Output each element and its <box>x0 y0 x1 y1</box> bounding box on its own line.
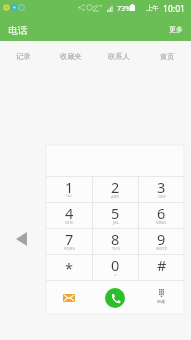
staticText: WXYZ <box>156 246 168 252</box>
button[interactable]: 3 <box>139 176 184 202</box>
staticText: ABC <box>111 194 120 200</box>
staticText: 73% <box>117 3 132 13</box>
button[interactable]: 1 <box>46 176 92 202</box>
button[interactable]: Collapse <box>9 227 33 251</box>
staticText: + <box>114 272 117 278</box>
staticText: 7 <box>65 229 74 249</box>
button[interactable]: 更多 <box>161 22 191 37</box>
button[interactable]: 6 <box>139 202 184 228</box>
staticText: 8 <box>111 229 120 249</box>
staticText: “ <box>100 3 103 11</box>
button[interactable]: 收藏夹 <box>47 41 95 69</box>
staticText: JKL <box>113 220 119 226</box>
staticText: DEF <box>158 194 166 200</box>
button[interactable]: 电话 <box>0 22 36 40</box>
button[interactable]: 黄页 <box>143 41 191 69</box>
staticText: 5 <box>111 203 120 223</box>
button[interactable]: 记录 <box>0 41 47 69</box>
staticText: MNO <box>156 220 167 226</box>
staticText: 6 <box>157 203 166 223</box>
staticText: 0 <box>111 255 120 275</box>
button[interactable]: Send message <box>46 280 92 314</box>
staticText: 收藏夹 <box>60 52 82 61</box>
button[interactable]: 7 <box>46 228 92 254</box>
staticText: 2 <box>111 177 120 197</box>
staticText: 黄页 <box>160 52 175 61</box>
staticText: 电话 <box>8 25 28 37</box>
staticText: 4 <box>65 203 74 223</box>
button[interactable]: 9 <box>139 228 184 254</box>
staticText: 10:01 <box>163 3 185 15</box>
staticText: 上午 <box>146 4 159 12</box>
button[interactable]: 5 <box>93 202 138 228</box>
staticText: * <box>65 258 73 278</box>
staticText: 3 <box>157 177 166 197</box>
staticText: 隐藏 <box>157 299 165 304</box>
button[interactable]: 0 <box>93 254 138 280</box>
button[interactable]: 8 <box>93 228 138 254</box>
staticText: 联系人 <box>108 52 130 61</box>
staticText: GHI <box>65 220 73 226</box>
staticText: TUV <box>112 246 120 252</box>
staticText: 更多 <box>169 25 183 34</box>
button[interactable]: 4 <box>46 202 92 228</box>
button[interactable]: Hide keypad <box>138 280 184 314</box>
staticText: 9 <box>157 229 166 249</box>
button[interactable]: # <box>139 254 184 280</box>
button[interactable]: 联系人 <box>95 41 143 69</box>
button[interactable]: 2 <box>93 176 138 202</box>
staticText: # <box>157 255 167 275</box>
staticText: 记录 <box>16 52 31 61</box>
staticText: PQRS <box>64 246 75 252</box>
button[interactable]: Call <box>92 280 138 314</box>
staticText: 1 <box>65 177 74 197</box>
button[interactable]: * <box>46 254 92 280</box>
